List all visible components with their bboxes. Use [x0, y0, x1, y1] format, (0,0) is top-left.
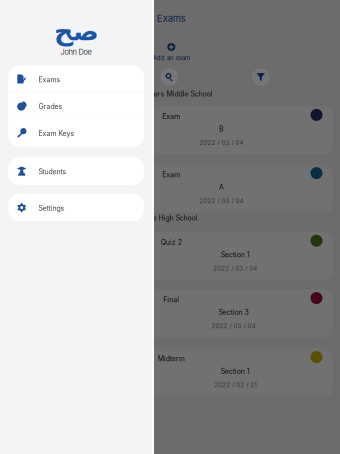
staticText: A	[219, 183, 224, 191]
staticText: Exam	[162, 170, 180, 179]
staticText: Flowers Middle School	[137, 90, 212, 98]
staticText: 2022 / 03 / 04	[200, 197, 244, 205]
button[interactable]: Grades	[8, 92, 144, 119]
staticText: Settings	[38, 204, 64, 212]
button[interactable]: Exams	[8, 66, 144, 92]
staticText: Quiz 2	[161, 238, 182, 246]
staticText: Exams	[38, 75, 60, 84]
button[interactable]: Add an exam	[121, 37, 221, 56]
staticText: 2022 / 03 / 04	[213, 265, 257, 272]
staticText: 2022 / 03 / 04	[211, 322, 255, 330]
staticText: Midterm	[158, 354, 185, 363]
button[interactable]: Settings	[8, 194, 144, 221]
staticText: Exam	[162, 112, 180, 121]
button[interactable]: Exam	[133, 164, 333, 212]
staticText: Add an exam	[153, 54, 190, 62]
staticText: Final	[163, 295, 179, 304]
button[interactable]: Quiz 2	[133, 232, 333, 280]
staticText: John Doe	[60, 47, 91, 56]
staticText: Grades	[38, 102, 62, 111]
staticText: Exams	[157, 13, 186, 24]
staticText: 2022 / 03 / 04	[200, 139, 244, 146]
button[interactable]: Exam	[133, 106, 333, 154]
staticText: Section 1	[221, 251, 250, 259]
button[interactable]: Filter	[253, 69, 269, 85]
staticText: Acme High School	[137, 214, 197, 222]
staticText: Section 3	[218, 308, 248, 316]
button[interactable]: Exam Keys	[8, 119, 144, 146]
button[interactable]: Students	[8, 158, 144, 185]
button[interactable]: Midterm	[133, 348, 333, 396]
staticText: Students	[38, 167, 66, 176]
staticText: Exam Keys	[38, 129, 74, 138]
staticText: صح	[53, 16, 98, 46]
staticText: 2022 / 02 / 21	[214, 381, 256, 389]
staticText: Section 1	[221, 367, 250, 375]
button[interactable]: Search	[162, 69, 178, 85]
button[interactable]: Final	[133, 289, 333, 337]
staticText: B	[219, 125, 224, 133]
